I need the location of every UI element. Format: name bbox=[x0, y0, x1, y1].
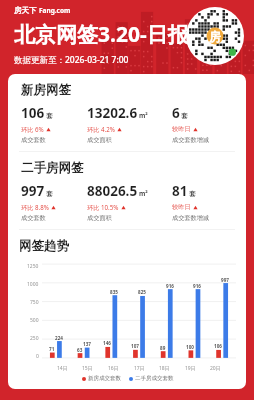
staticText: 100 bbox=[186, 344, 194, 350]
staticText: 环比 6% bbox=[21, 125, 44, 133]
staticText: 81 bbox=[172, 182, 188, 200]
staticText: 107 bbox=[131, 343, 139, 349]
staticText: 500 bbox=[30, 317, 39, 324]
staticText: 套 bbox=[46, 112, 53, 120]
staticText: 997 bbox=[21, 182, 45, 200]
staticText: 825 bbox=[138, 289, 146, 295]
staticText: 997 bbox=[221, 277, 229, 283]
staticText: 房天下 bbox=[14, 6, 37, 15]
staticText: 较昨日 bbox=[172, 125, 191, 133]
staticText: 网签趋势 bbox=[19, 238, 69, 254]
staticText: 916 bbox=[166, 283, 174, 289]
staticText: 15日 bbox=[82, 365, 93, 372]
staticText: 北京网签3.20-日报 bbox=[14, 20, 189, 49]
staticText: 套 bbox=[46, 190, 53, 198]
staticText: 套 bbox=[189, 190, 196, 198]
staticText: 106 bbox=[214, 343, 222, 349]
staticText: 63 bbox=[77, 347, 83, 353]
staticText: 成交套数增减 bbox=[172, 136, 210, 144]
staticText: 224 bbox=[55, 335, 63, 341]
staticText: 成交面积 bbox=[87, 136, 112, 144]
staticText: 750 bbox=[30, 299, 39, 306]
staticText: 新房成交套数 bbox=[88, 375, 121, 382]
staticText: 数据更新至：2026-03-21 7:00 bbox=[14, 54, 129, 66]
staticText: 835 bbox=[110, 289, 118, 295]
staticText: 916 bbox=[193, 283, 201, 289]
staticText: 1250 bbox=[27, 263, 39, 270]
staticText: 房 bbox=[209, 29, 221, 44]
button[interactable]: 扫描二维码 bbox=[186, 7, 244, 65]
staticText: 88026.5 bbox=[87, 182, 138, 200]
staticText: 106 bbox=[21, 104, 45, 122]
staticText: 17日 bbox=[134, 365, 145, 372]
staticText: m² bbox=[139, 189, 148, 198]
staticText: 1000 bbox=[27, 281, 39, 288]
button[interactable]: 二手房网签 bbox=[8, 152, 246, 229]
staticText: 146 bbox=[103, 340, 111, 346]
staticText: 0 bbox=[36, 353, 39, 360]
staticText: 套 bbox=[181, 112, 188, 120]
staticText: 二手房网签 bbox=[21, 160, 84, 176]
staticText: 18日 bbox=[159, 365, 170, 372]
staticText: 14日 bbox=[57, 365, 68, 372]
staticText: 环比 8.8% bbox=[21, 203, 49, 211]
staticText: 71 bbox=[49, 346, 55, 352]
staticText: 环比 4.2% bbox=[87, 125, 115, 133]
staticText: 二手房成交套数 bbox=[135, 375, 174, 382]
button[interactable]: 网签趋势 bbox=[8, 230, 246, 389]
staticText: 19日 bbox=[185, 365, 196, 372]
staticText: 89 bbox=[160, 345, 166, 351]
staticText: 13202.6 bbox=[87, 104, 138, 122]
staticText: 250 bbox=[30, 335, 39, 342]
staticText: 16日 bbox=[108, 365, 119, 372]
staticText: 较昨日 bbox=[172, 203, 191, 211]
button[interactable]: 新房网签 bbox=[8, 74, 246, 151]
staticText: Fang.com bbox=[39, 6, 71, 15]
staticText: 成交套数 bbox=[21, 214, 46, 222]
staticText: 6 bbox=[172, 104, 180, 122]
staticText: 成交套数 bbox=[21, 136, 46, 144]
staticText: m² bbox=[139, 111, 148, 120]
staticText: 137 bbox=[83, 341, 91, 347]
staticText: 新房网签 bbox=[21, 82, 71, 98]
staticText: 环比 10.5% bbox=[87, 203, 119, 211]
staticText: 成交套数增减 bbox=[172, 214, 210, 222]
staticText: 20日 bbox=[210, 365, 221, 372]
staticText: 成交面积 bbox=[87, 214, 112, 222]
